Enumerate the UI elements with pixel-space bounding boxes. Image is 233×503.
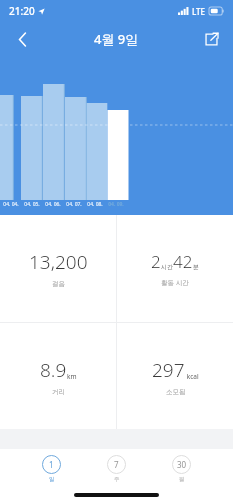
staticText: 거리 bbox=[52, 388, 65, 396]
staticText: 주 bbox=[114, 476, 120, 483]
staticText: 04. 04. bbox=[3, 201, 19, 208]
staticText: km bbox=[67, 372, 77, 381]
staticText: 297 bbox=[152, 357, 185, 383]
staticText: 1 bbox=[49, 459, 54, 470]
button[interactable]: 297 bbox=[117, 323, 233, 429]
staticText: 04. 09. bbox=[108, 201, 124, 208]
staticText: LTE bbox=[192, 6, 206, 17]
staticText: 04. 08. bbox=[87, 201, 103, 208]
button[interactable]: 1 bbox=[40, 454, 63, 484]
staticText: 2 bbox=[151, 250, 161, 273]
staticText: 04. 06. bbox=[45, 201, 61, 208]
button[interactable]: 8.9 bbox=[0, 323, 116, 429]
button[interactable]: 2 bbox=[117, 215, 233, 322]
staticText: 42 bbox=[173, 250, 193, 273]
button[interactable]: Share bbox=[195, 24, 227, 54]
staticText: 7 bbox=[114, 459, 119, 470]
staticText: 시간 bbox=[161, 263, 173, 271]
button[interactable]: 7 bbox=[105, 454, 128, 484]
button[interactable]: 30 bbox=[170, 454, 193, 484]
staticText: 일 bbox=[49, 476, 55, 483]
staticText: 04. 05. bbox=[24, 201, 40, 208]
staticText: 걸음 bbox=[52, 280, 65, 288]
button[interactable]: Back bbox=[6, 24, 38, 54]
staticText: 30 bbox=[177, 459, 187, 470]
staticText: 분 bbox=[193, 263, 199, 271]
staticText: 21:20 bbox=[9, 4, 35, 18]
staticText: 8.9 bbox=[40, 357, 67, 383]
staticText: 13,200 bbox=[29, 249, 88, 275]
staticText: 활동 시간 bbox=[161, 278, 189, 287]
staticText: kcal bbox=[185, 372, 199, 381]
button[interactable]: 13,200 bbox=[0, 215, 116, 322]
staticText: 4월 9일 bbox=[94, 30, 139, 48]
staticText: 소모됨 bbox=[166, 388, 186, 396]
staticText: 04. 07. bbox=[66, 201, 82, 208]
staticText: 월 bbox=[179, 476, 185, 483]
